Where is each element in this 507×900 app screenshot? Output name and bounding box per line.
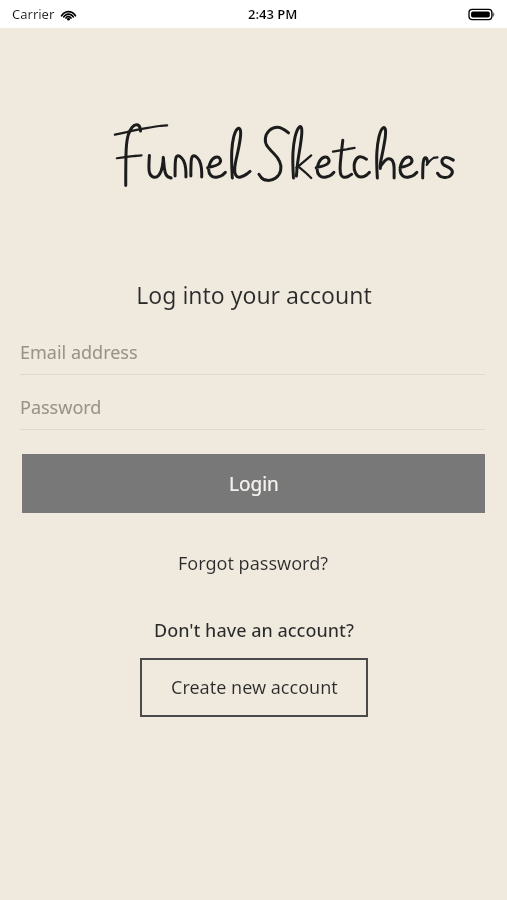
staticText: Create new account [171,675,338,700]
staticText: Log into your account [136,279,372,310]
button[interactable]: Password [0,386,486,430]
button[interactable]: Forgot password? [168,547,339,580]
other: Battery [469,8,495,21]
staticText: Login [229,471,279,497]
other: Wi-Fi [60,8,77,21]
staticText: 2:43 PM [248,5,298,23]
staticText: Don't have an account? [154,618,354,643]
button[interactable]: Create new account [140,658,368,717]
button[interactable]: Login [22,454,485,513]
staticText: Forgot password? [178,551,329,576]
staticText: Password [20,395,102,420]
button[interactable]: Email address [0,331,486,375]
staticText: Carrier [12,5,55,23]
staticText: Email address [20,340,138,365]
other: Funnel Sketchers [106,114,402,194]
